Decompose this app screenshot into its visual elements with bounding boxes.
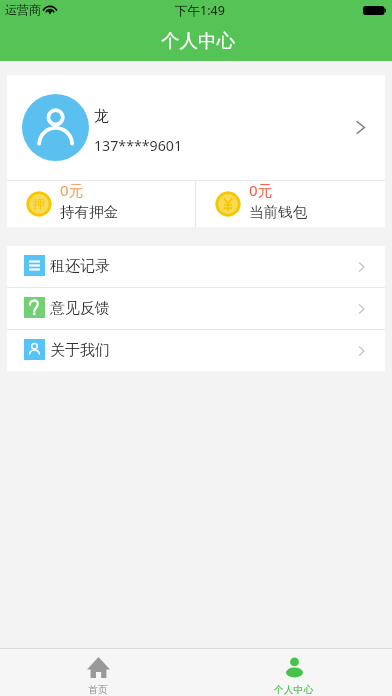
other: Wi-Fi: [44, 5, 56, 14]
staticText: 首页: [88, 684, 108, 696]
button[interactable]: 押: [7, 181, 195, 227]
staticText: 0元: [249, 180, 273, 200]
staticText: 持有押金: [60, 203, 118, 221]
button[interactable]: 首页: [0, 649, 196, 696]
staticText: 关于我们: [50, 341, 110, 360]
staticText: 137****9601: [94, 136, 183, 155]
staticText: 意见反馈: [50, 299, 110, 318]
staticText: 运营商: [5, 2, 41, 17]
other: Battery full: [363, 6, 386, 15]
staticText: 0元: [60, 180, 84, 200]
button[interactable]: 关于我们: [7, 330, 385, 371]
staticText: 个人中心: [274, 684, 314, 696]
staticText: 个人中心: [161, 29, 235, 52]
staticText: 押: [33, 197, 45, 211]
button[interactable]: 龙: [7, 75, 385, 180]
button[interactable]: 租还记录: [7, 246, 385, 287]
staticText: 下午1:49: [175, 2, 225, 19]
button[interactable]: 意见反馈: [7, 288, 385, 329]
staticText: 租还记录: [50, 257, 110, 276]
button[interactable]: 0元: [196, 181, 385, 227]
button[interactable]: 个人中心: [196, 649, 392, 696]
other: Profile details: [355, 118, 366, 137]
staticText: 当前钱包: [249, 203, 307, 221]
staticText: 龙: [94, 107, 109, 126]
